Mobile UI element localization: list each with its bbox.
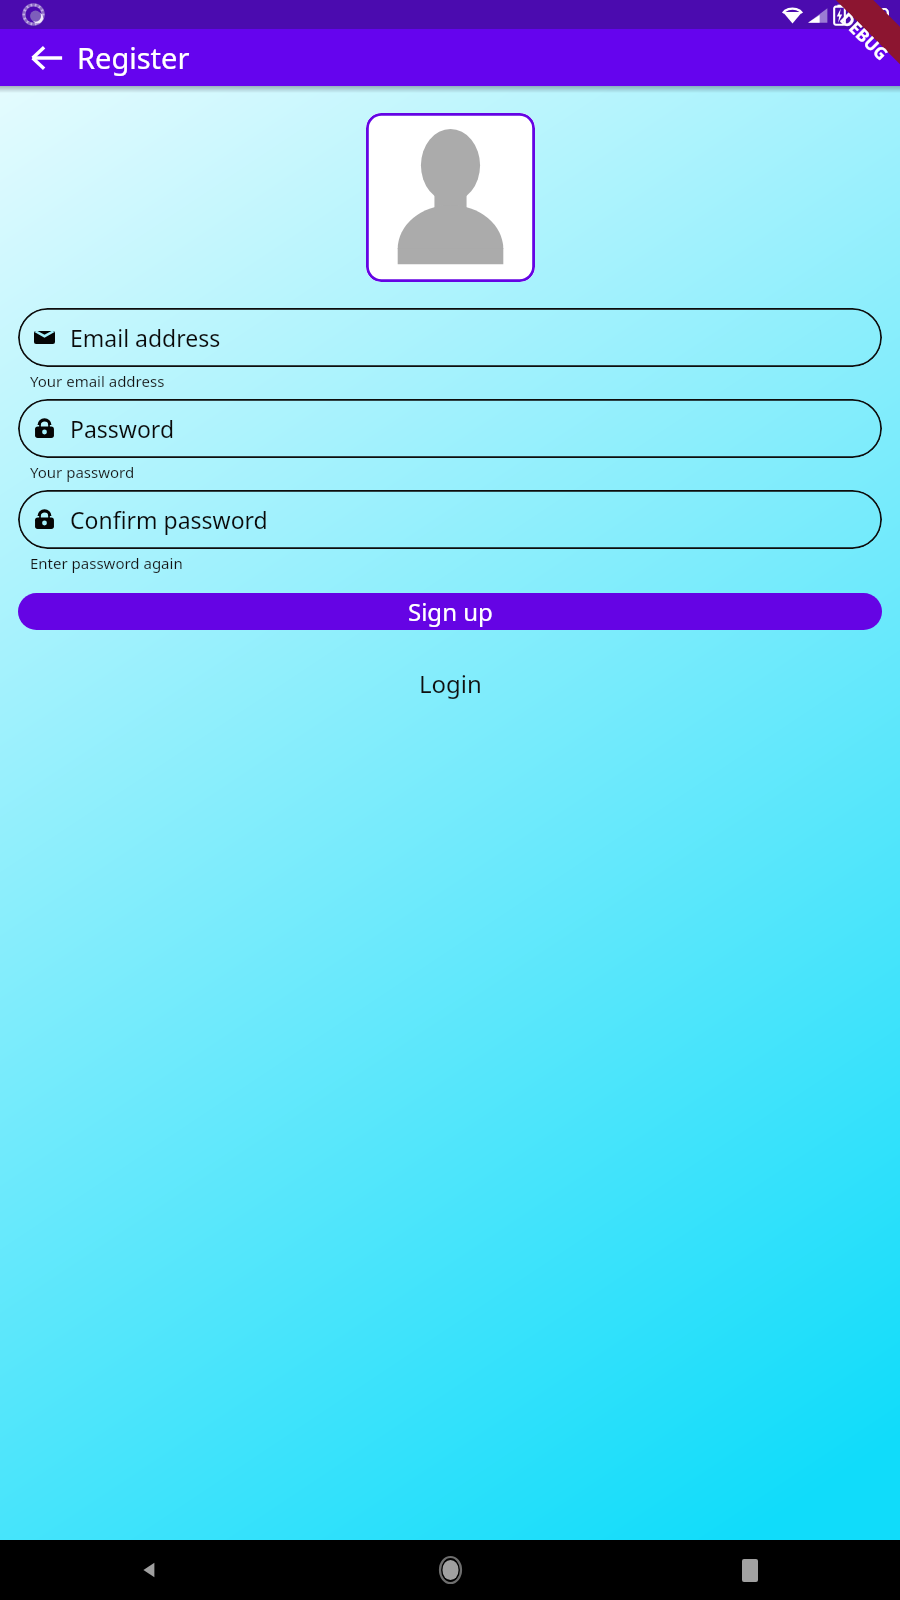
staticText: DEBUG <box>835 7 893 65</box>
button[interactable]: Sign up <box>18 593 882 630</box>
staticText: Sign up <box>408 595 493 628</box>
staticText: Email address <box>70 322 221 353</box>
staticText: 1:49 <box>852 2 890 28</box>
staticText: Password <box>70 413 175 444</box>
button[interactable]: Login <box>403 663 498 704</box>
staticText: Your password <box>30 462 135 482</box>
staticText: Your email address <box>30 371 165 391</box>
button[interactable]: Password <box>18 399 882 458</box>
button[interactable]: Recent apps <box>600 1540 900 1600</box>
button[interactable]: Home <box>300 1540 600 1600</box>
button[interactable]: Back <box>0 1540 300 1600</box>
button[interactable]: Back <box>28 39 66 77</box>
staticText: Enter password again <box>30 553 183 573</box>
staticText: Login <box>419 667 482 700</box>
button[interactable]: Email address <box>18 308 882 367</box>
button[interactable]: Profile picture <box>366 113 535 282</box>
button[interactable]: Confirm password <box>18 490 882 549</box>
staticText: Confirm password <box>70 504 268 535</box>
staticText: Register <box>77 38 190 77</box>
